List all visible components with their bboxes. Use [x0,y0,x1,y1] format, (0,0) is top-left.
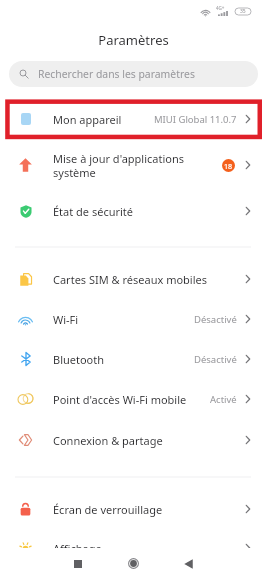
button[interactable]: Recent apps [62,548,93,579]
staticText: Point d'accès Wi-Fi mobile [53,392,187,407]
button[interactable]: Home [118,548,149,579]
button[interactable]: Mon appareil [0,99,267,139]
staticText: 18 [224,161,233,171]
button[interactable]: Rechercher dans les paramètres [9,61,258,87]
button[interactable]: Mise à jour d'applications système [0,139,267,191]
staticText: Connexion & partage [53,433,163,448]
button[interactable]: État de sécurité [0,191,267,231]
staticText: Rechercher dans les paramètres [38,67,195,81]
staticText: Mon appareil [53,112,122,127]
button[interactable]: Bluetooth [0,339,267,379]
staticText: Paramètres [98,31,169,49]
staticText: 35 [240,8,246,15]
button[interactable]: Connexion & partage [0,419,267,461]
button[interactable]: Back [173,548,204,579]
button[interactable]: Wi-Fi [0,299,267,339]
button[interactable]: Affichage [0,528,267,568]
staticText: Bluetooth [53,352,105,367]
staticText: Cartes SIM & réseaux mobiles [53,272,207,287]
button[interactable]: Point d'accès Wi-Fi mobile [0,379,267,419]
staticText: Affichage [53,541,102,556]
staticText: Mise à jour d'applications système [53,151,185,180]
staticText: Écran de verrouillage [53,502,163,517]
staticText: État de sécurité [53,204,134,219]
staticText: Désactivé [194,313,237,326]
staticText: Wi-Fi [53,312,79,327]
staticText: Désactivé [194,353,237,366]
button[interactable]: Écran de verrouillage [0,489,267,529]
staticText: 4G+ [216,5,225,11]
button[interactable]: Cartes SIM & réseaux mobiles [0,259,267,299]
staticText: MIUI Global 11.0.7 [154,113,237,126]
staticText: Activé [210,393,237,406]
